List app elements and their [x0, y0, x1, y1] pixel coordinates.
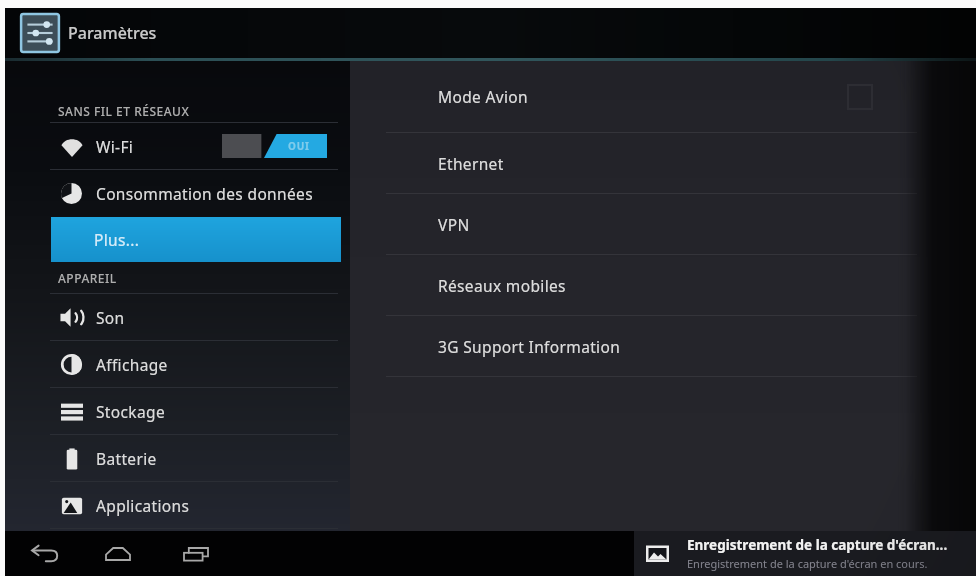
button[interactable]: Affichage: [5, 341, 350, 387]
staticText: Enregistrement de la capture d'écran en …: [687, 556, 928, 571]
staticText: Applications: [96, 495, 190, 516]
button[interactable]: Batterie: [5, 435, 350, 481]
staticText: OUI: [288, 139, 310, 153]
button[interactable]: Ethernet: [350, 133, 976, 193]
staticText: 3G Support Information: [438, 336, 621, 357]
button[interactable]: Recent apps: [177, 535, 215, 573]
button[interactable]: Mode Avion: [350, 61, 976, 132]
staticText: Son: [96, 307, 125, 328]
button[interactable]: Plus...: [51, 217, 341, 262]
staticText: Affichage: [96, 354, 168, 375]
button[interactable]: Stockage: [5, 388, 350, 434]
staticText: APPAREIL: [58, 270, 117, 286]
button[interactable]: Enregistrement de la capture d'écran...: [634, 531, 976, 576]
staticText: Mode Avion: [438, 86, 528, 107]
staticText: Réseaux mobiles: [438, 275, 566, 296]
staticText: Paramètres: [68, 22, 157, 44]
button[interactable]: 3G Support Information: [350, 316, 976, 376]
staticText: Plus...: [94, 229, 140, 250]
button[interactable]: Home: [99, 535, 137, 573]
staticText: Enregistrement de la capture d'écran...: [687, 536, 948, 554]
button[interactable]: VPN: [350, 194, 976, 254]
staticText: Wi-Fi: [96, 136, 134, 157]
button[interactable]: Réseaux mobiles: [350, 255, 976, 315]
staticText: VPN: [438, 214, 470, 235]
button[interactable]: Son: [5, 294, 350, 340]
staticText: Ethernet: [438, 153, 504, 174]
button[interactable]: Wi-Fi: [5, 123, 350, 169]
button[interactable]: Consommation des données: [5, 170, 350, 216]
staticText: SANS FIL ET RÉSEAUX: [58, 103, 190, 119]
button[interactable]: Back: [25, 535, 63, 573]
button[interactable]: Paramètres: [5, 8, 175, 58]
staticText: Batterie: [96, 448, 157, 469]
staticText: Stockage: [96, 401, 165, 422]
button[interactable]: Applications: [5, 482, 350, 528]
staticText: Consommation des données: [96, 183, 313, 204]
